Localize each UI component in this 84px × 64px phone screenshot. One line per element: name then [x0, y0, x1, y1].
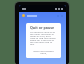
staticText: I'm going to look at all the other react… — [30, 30, 57, 45]
button[interactable]: Quit or pause — [26, 23, 61, 58]
staticText: Dear Psychologist Hello, — [30, 49, 57, 55]
staticText: Quit or pause — [30, 25, 55, 30]
button[interactable]: Search — [19, 12, 66, 19]
